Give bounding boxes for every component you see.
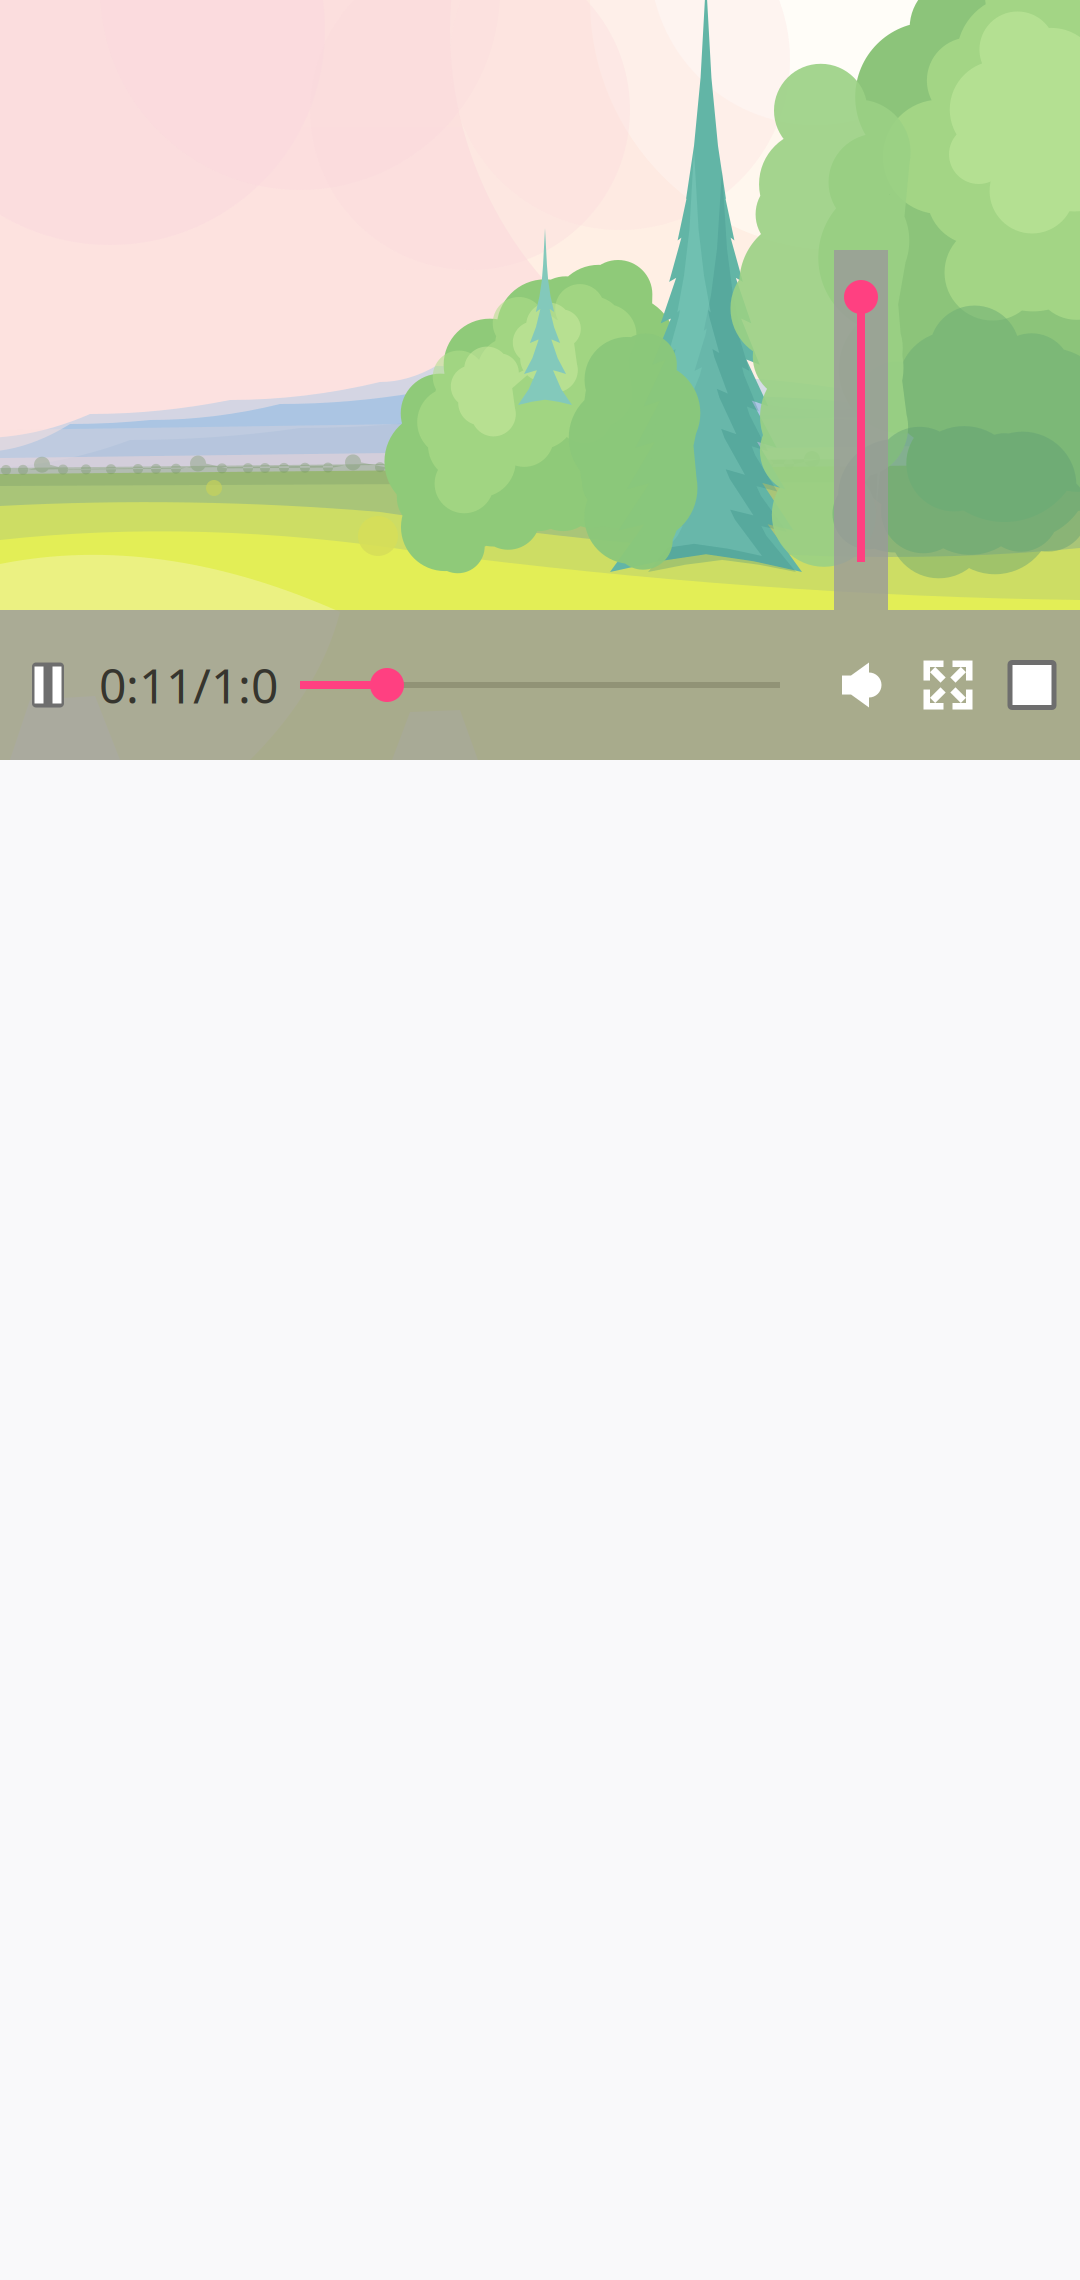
button[interactable]: Volume level bbox=[834, 250, 888, 610]
button[interactable]: Stop bbox=[996, 640, 1068, 730]
staticText: 0:11/1:0 bbox=[99, 653, 278, 717]
button[interactable]: Full screen bbox=[912, 640, 984, 730]
button[interactable]: Pause bbox=[12, 640, 84, 730]
button[interactable]: Volume bbox=[826, 640, 898, 730]
